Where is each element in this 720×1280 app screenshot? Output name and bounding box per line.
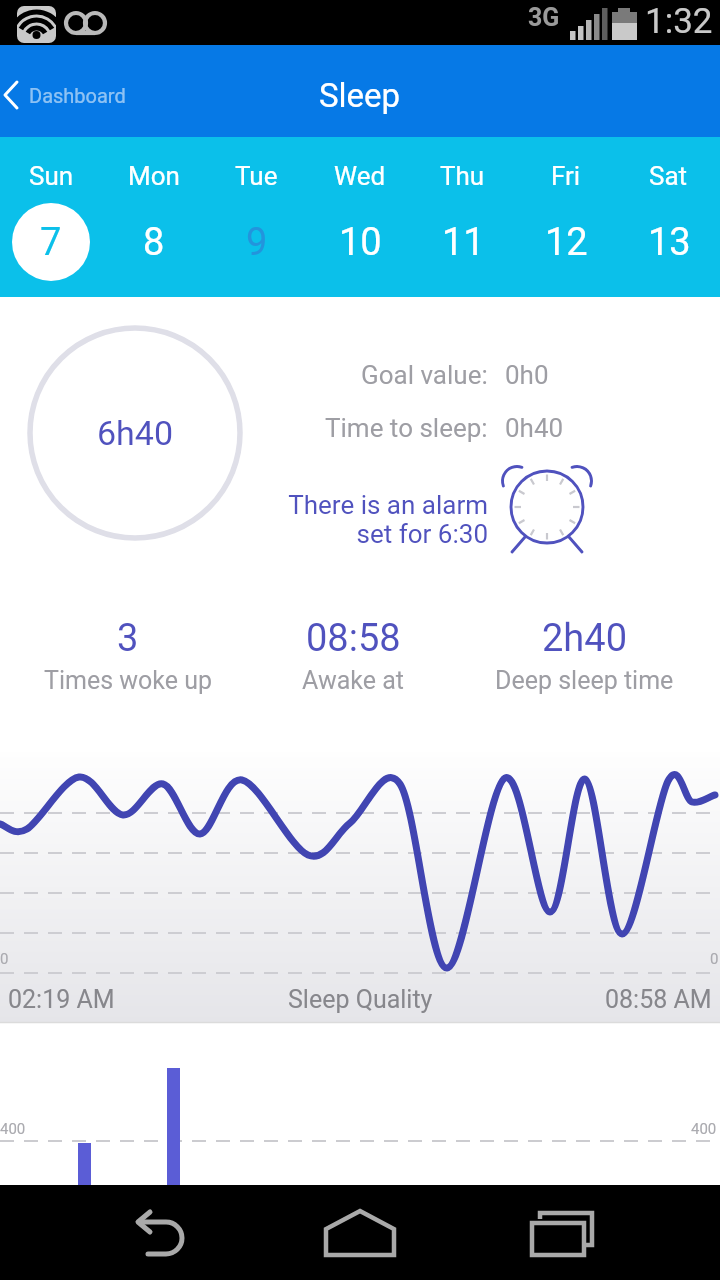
button[interactable]: Sun [0, 137, 102, 297]
staticText: Mon [128, 161, 180, 191]
button[interactable]: Fri [514, 137, 617, 297]
button[interactable] [480, 1185, 640, 1280]
staticText: 11 [442, 220, 485, 265]
staticText: Sleep Quality [288, 985, 433, 1014]
staticText: Thu [440, 161, 485, 191]
staticText: 02:19 AM [8, 985, 115, 1014]
staticText: 3 [117, 616, 139, 661]
staticText: Deep sleep time [495, 666, 674, 695]
staticText: Awake at [302, 666, 404, 695]
button[interactable]: Sat [617, 137, 720, 297]
button[interactable]: Dashboard [0, 78, 126, 112]
staticText: 9 [246, 220, 268, 265]
staticText: Sat [649, 161, 688, 191]
staticText: Tue [235, 161, 278, 191]
staticText: 400 [691, 1120, 717, 1138]
staticText: Time to sleep: [325, 413, 488, 443]
staticText: 13 [648, 220, 691, 265]
staticText: 2h40 [542, 616, 627, 661]
staticText: 0h0 [505, 360, 549, 390]
staticText: 400 [0, 1120, 26, 1138]
staticText: 08:58 [306, 616, 401, 661]
staticText: 8 [143, 220, 165, 265]
staticText: 6h40 [97, 413, 174, 453]
staticText: There is an alarm set for 6:30 [288, 490, 488, 549]
button[interactable] [280, 1185, 440, 1280]
staticText: 7 [40, 220, 62, 265]
staticText: Times woke up [44, 666, 213, 695]
button[interactable] [80, 1185, 240, 1280]
staticText: Fri [551, 161, 581, 191]
button[interactable]: Mon [102, 137, 205, 297]
button[interactable]: Tue [205, 137, 308, 297]
button[interactable]: Wed [308, 137, 411, 297]
staticText: 3G [528, 3, 560, 32]
staticText: Goal value: [361, 360, 488, 390]
staticText: 08:58 AM [605, 985, 712, 1014]
staticText: 0 [710, 950, 719, 968]
staticText: 10 [339, 220, 382, 265]
staticText: Wed [334, 161, 386, 191]
staticText: Sleep [319, 76, 401, 115]
staticText: 1:32 [645, 1, 713, 42]
staticText: 0h40 [505, 413, 564, 443]
button[interactable]: Thu [411, 137, 514, 297]
staticText: Sun [29, 161, 74, 191]
staticText: 12 [545, 220, 588, 265]
staticText: Dashboard [29, 84, 126, 107]
staticText: 0 [0, 950, 9, 968]
